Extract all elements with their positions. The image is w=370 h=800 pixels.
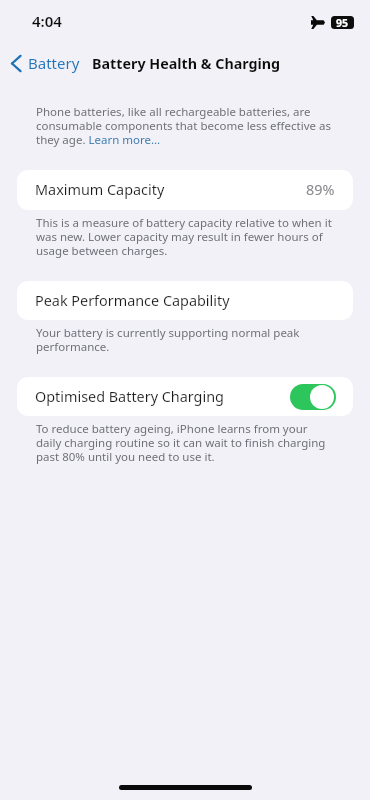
staticText: Phone batteries, like all rechargeable b… [36,104,334,147]
button[interactable]: Optimised Battery Charging toggle [290,384,336,410]
staticText: This is a measure of battery capacity re… [36,215,334,258]
button[interactable]: Optimised Battery Charging [17,377,353,416]
staticText: 95 [336,16,349,28]
staticText: Peak Performance Capability [35,291,230,311]
button[interactable]: Battery [0,49,86,77]
staticText: Maximum Capacity [35,180,165,200]
staticText: 4:04 [32,11,62,31]
button[interactable]: Maximum Capacity [17,170,353,210]
staticText: Your battery is currently supporting nor… [36,325,334,354]
staticText: Battery [28,53,80,73]
staticText: 89% [306,180,335,200]
staticText: To reduce battery ageing, iPhone learns … [36,421,334,464]
button[interactable]: Peak Performance Capability [17,281,353,320]
other: Aeroplane mode [311,16,325,29]
staticText: Optimised Battery Charging [35,387,224,407]
staticText: Battery Health & Charging [92,54,281,73]
